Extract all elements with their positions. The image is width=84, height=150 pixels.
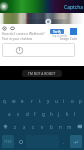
button[interactable]: g [39, 107, 47, 120]
button[interactable]: z [10, 120, 20, 133]
button[interactable]: c [29, 120, 38, 133]
button[interactable]: p [76, 94, 84, 107]
staticText: t [39, 98, 41, 104]
button[interactable]: r [27, 94, 36, 107]
button[interactable]: a [5, 107, 14, 120]
staticText: l [74, 111, 76, 117]
staticText: x [23, 124, 26, 130]
staticText: e [21, 98, 24, 104]
staticText: a [8, 111, 11, 117]
button[interactable]: m [65, 120, 74, 133]
staticText: i [63, 98, 65, 104]
button[interactable]: t [36, 94, 44, 107]
button[interactable]: v [38, 120, 47, 133]
staticText: Image Code [60, 37, 78, 41]
staticText: v [41, 124, 44, 130]
button[interactable]: k [63, 107, 71, 120]
staticText: Verify [53, 30, 62, 34]
button[interactable]: s [14, 107, 23, 120]
staticText: c [32, 124, 35, 130]
staticText: w [12, 98, 16, 104]
staticText: Tap to verify [52, 34, 67, 38]
button[interactable]: b [47, 120, 56, 133]
button[interactable]: q [0, 94, 9, 107]
staticText: n [59, 124, 62, 130]
button[interactable]: x [20, 120, 29, 133]
staticText: p [79, 98, 82, 104]
staticText: m [67, 124, 72, 130]
button[interactable]: e [18, 94, 27, 107]
button[interactable]: i [60, 94, 68, 107]
staticText: r [31, 98, 33, 104]
button[interactable]: Shift [0, 120, 10, 133]
button[interactable]: f [31, 107, 39, 120]
staticText: How do I create a Webhook? [2, 32, 45, 36]
button[interactable]: y [44, 94, 52, 107]
staticText: h [50, 111, 53, 117]
staticText: g [42, 111, 45, 117]
button[interactable]: o [68, 94, 76, 107]
button[interactable]: Verify [50, 29, 64, 34]
button[interactable]: Backspace [74, 120, 84, 133]
button[interactable]: w [9, 94, 18, 107]
staticText: ?123 [4, 139, 12, 144]
staticText: j [58, 111, 60, 117]
button[interactable]: u [52, 94, 60, 107]
staticText: k [66, 111, 69, 117]
button[interactable]: I'M NOT A ROBOT [22, 70, 62, 77]
staticText: f [34, 111, 36, 117]
button[interactable]: Enter [70, 135, 82, 148]
button[interactable]: h [47, 107, 55, 120]
staticText: y [47, 98, 50, 104]
staticText: q [3, 98, 6, 104]
staticText: s [17, 111, 20, 117]
button[interactable]: n [56, 120, 65, 133]
staticText: I'M NOT A ROBOT [28, 72, 56, 76]
staticText: u [55, 98, 58, 104]
button[interactable]: Emoji [16, 133, 25, 150]
staticText: Text in your chatbox [2, 37, 33, 41]
staticText: d [26, 111, 29, 117]
button[interactable]: ?123 [2, 135, 14, 148]
staticText: . [63, 139, 65, 145]
button[interactable]: d [23, 107, 31, 120]
staticText: o [71, 98, 74, 104]
button[interactable]: Post actions [2, 26, 15, 31]
button[interactable]: l [71, 107, 79, 120]
staticText: z [14, 124, 17, 130]
button[interactable] [2, 43, 75, 57]
staticText: Captcha [64, 4, 84, 11]
staticText: b [50, 124, 53, 130]
button[interactable]: j [55, 107, 63, 120]
